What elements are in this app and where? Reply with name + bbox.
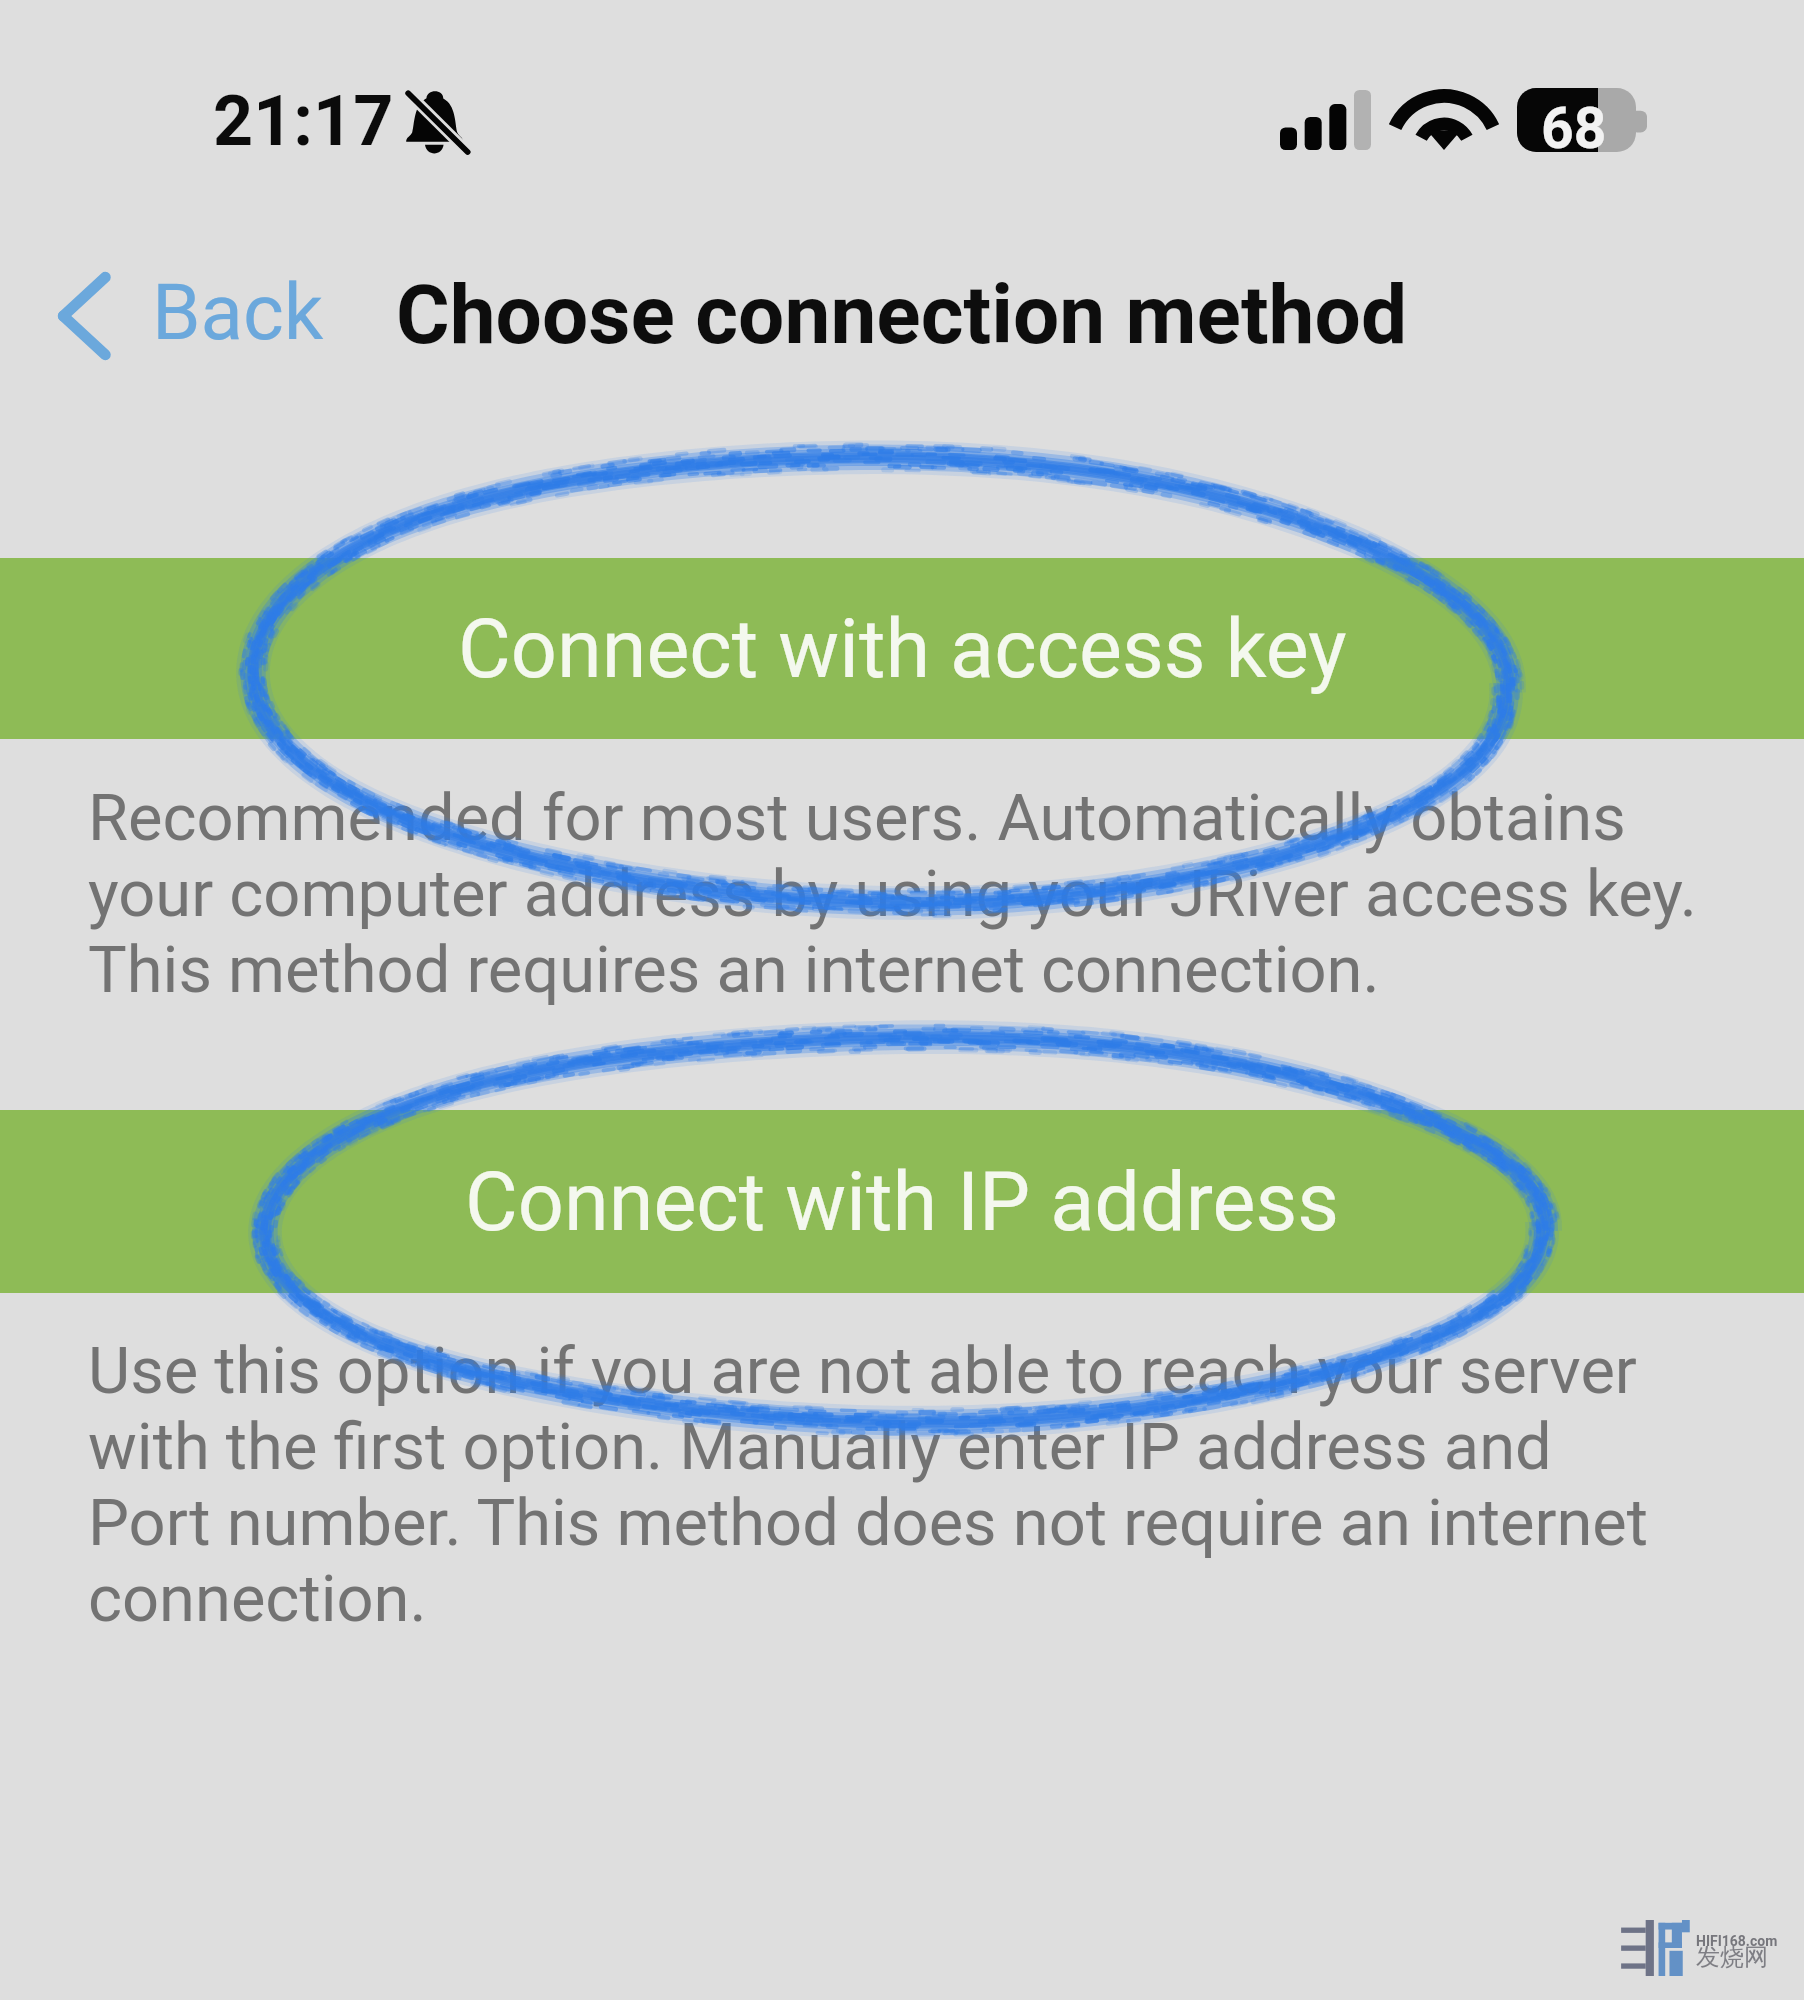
staticText: Choose connection method — [396, 267, 1408, 363]
staticText: Recommended for most users. Automaticall… — [88, 780, 1804, 1008]
other: Back — [56, 271, 112, 361]
button[interactable]: Connect with IP address — [0, 1110, 1804, 1293]
staticText: Connect with IP address — [465, 1154, 1339, 1250]
staticText: 发烧网 — [1696, 1946, 1768, 1971]
staticText: Back — [152, 268, 324, 358]
staticText: 68 — [1541, 95, 1607, 159]
staticText: HIFI168.com — [1696, 1933, 1778, 1949]
staticText: 21:17 — [213, 80, 394, 162]
button[interactable]: Back — [22, 249, 344, 383]
staticText: Connect with access key — [458, 601, 1347, 697]
button[interactable]: Connect with access key — [0, 558, 1804, 739]
staticText: Use this option if you are not able to r… — [88, 1333, 1804, 1637]
